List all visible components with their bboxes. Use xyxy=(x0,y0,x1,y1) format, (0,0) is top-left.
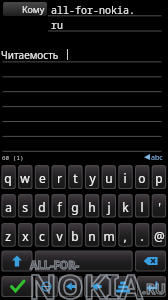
staticText: all-for-nokia. xyxy=(51,3,135,17)
staticText: o xyxy=(138,170,146,186)
button[interactable]: x xyxy=(18,223,32,247)
button[interactable]: , xyxy=(118,223,132,247)
button[interactable]: k xyxy=(118,194,132,218)
staticText: w xyxy=(20,170,30,186)
staticText: m xyxy=(103,228,115,244)
staticText: u xyxy=(105,170,113,186)
button[interactable]: . xyxy=(135,223,149,247)
button[interactable]: r xyxy=(52,165,66,189)
staticText: l xyxy=(140,199,144,215)
staticText: j xyxy=(107,199,111,215)
staticText: f xyxy=(57,199,62,215)
button[interactable]: w xyxy=(18,165,32,189)
staticText: n xyxy=(88,228,96,244)
staticText: ALL-FOR- xyxy=(30,257,79,272)
button[interactable]: y xyxy=(85,165,99,189)
staticText: ' xyxy=(158,199,161,215)
staticText: , xyxy=(123,228,127,244)
staticText: s xyxy=(22,199,28,215)
button[interactable]: s xyxy=(18,194,32,218)
button[interactable]: c xyxy=(35,223,49,247)
staticText: h xyxy=(88,199,96,215)
staticText: NOKIA xyxy=(29,263,143,300)
staticText: .RU xyxy=(142,279,166,298)
button[interactable]: l xyxy=(135,194,149,218)
staticText: d xyxy=(38,199,46,215)
staticText: e xyxy=(39,170,46,186)
button[interactable]: v xyxy=(52,223,66,247)
button[interactable]: Кому xyxy=(3,2,47,16)
button[interactable]: t xyxy=(68,165,82,189)
staticText: @ xyxy=(154,228,165,244)
staticText: Кому xyxy=(22,3,45,15)
staticText: r xyxy=(57,170,62,186)
button[interactable]: e xyxy=(35,165,49,189)
staticText: c xyxy=(39,228,45,244)
staticText: p xyxy=(155,170,163,186)
button[interactable]: a xyxy=(1,194,15,218)
button[interactable]: i xyxy=(118,165,132,189)
button[interactable]: z xyxy=(1,223,15,247)
staticText: abc xyxy=(151,153,163,163)
button[interactable]: ' xyxy=(152,194,166,218)
staticText: Читаемость xyxy=(1,48,59,62)
button[interactable]: h xyxy=(85,194,99,218)
staticText: i xyxy=(123,170,127,186)
button[interactable]: n xyxy=(85,223,99,247)
staticText: y xyxy=(89,170,96,186)
staticText: x xyxy=(22,228,29,244)
button[interactable]: p xyxy=(152,165,166,189)
button[interactable]: b xyxy=(68,223,82,247)
button[interactable]: o xyxy=(135,165,149,189)
staticText: k xyxy=(122,199,129,215)
button[interactable]: q xyxy=(1,165,15,189)
button[interactable]: g xyxy=(68,194,82,218)
staticText: a xyxy=(5,199,12,215)
button[interactable]: m xyxy=(102,223,116,247)
button[interactable]: @ xyxy=(152,223,166,247)
button[interactable]: j xyxy=(102,194,116,218)
staticText: q xyxy=(4,170,12,186)
staticText: z xyxy=(5,228,11,244)
button[interactable]: u xyxy=(102,165,116,189)
staticText: . xyxy=(140,228,144,244)
button[interactable]: d xyxy=(35,194,49,218)
staticText: 60 (1) xyxy=(2,154,24,162)
staticText: g xyxy=(71,199,79,215)
button[interactable]: f xyxy=(52,194,66,218)
staticText: v xyxy=(56,228,63,244)
staticText: ru xyxy=(51,18,63,32)
staticText: t xyxy=(73,170,78,186)
staticText: b xyxy=(71,228,79,244)
